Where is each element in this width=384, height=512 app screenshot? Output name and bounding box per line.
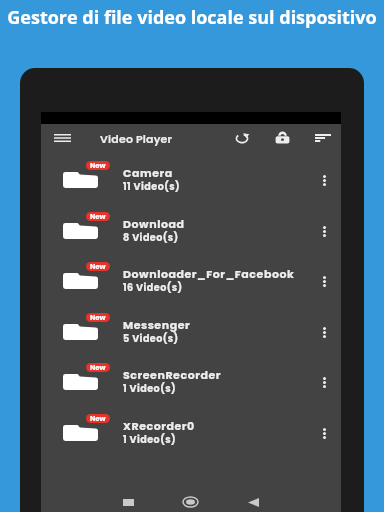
staticText: New	[90, 262, 106, 271]
button[interactable]: More options	[307, 155, 341, 206]
button[interactable]: More options	[307, 256, 341, 307]
staticText: Messenger	[123, 317, 191, 332]
staticText: Gestore di file video locale sul disposi…	[0, 5, 384, 30]
staticText: New	[90, 212, 106, 221]
button[interactable]: More options	[307, 408, 341, 459]
button[interactable]: Back	[234, 485, 272, 512]
button[interactable]: More options	[307, 206, 341, 257]
staticText: 8 Video(s)	[123, 231, 179, 244]
staticText: Camera	[123, 165, 173, 180]
staticText: ScreenRecorder	[123, 367, 222, 382]
staticText: 1 Video(s)	[123, 382, 177, 395]
staticText: 1 Video(s)	[123, 433, 177, 446]
staticText: XRecorder0	[123, 418, 195, 433]
button[interactable]: Refresh	[227, 124, 257, 152]
staticText: New	[90, 313, 106, 322]
staticText: New	[90, 363, 106, 372]
staticText: Download	[123, 216, 185, 231]
staticText: Video Player	[100, 131, 173, 146]
staticText: New	[90, 414, 106, 423]
button[interactable]: Menu	[48, 124, 77, 152]
staticText: 5 Video(s)	[123, 332, 179, 345]
button[interactable]: New	[41, 203, 341, 254]
button[interactable]: Lock	[267, 124, 298, 152]
button[interactable]: New	[41, 405, 341, 456]
button[interactable]: New	[41, 253, 341, 304]
button[interactable]: New	[41, 304, 341, 355]
button[interactable]: Sort	[309, 124, 337, 152]
staticText: Downloader_For_Facebook	[123, 266, 295, 281]
button[interactable]: Home	[171, 485, 209, 512]
staticText: 16 Video(s)	[123, 281, 183, 294]
button[interactable]: More options	[307, 357, 341, 408]
button[interactable]: New	[41, 354, 341, 405]
button[interactable]: New	[41, 152, 341, 203]
button[interactable]: More options	[307, 307, 341, 358]
staticText: 11 Video(s)	[123, 180, 181, 193]
staticText: New	[90, 161, 106, 170]
button[interactable]: Recents	[109, 485, 147, 512]
